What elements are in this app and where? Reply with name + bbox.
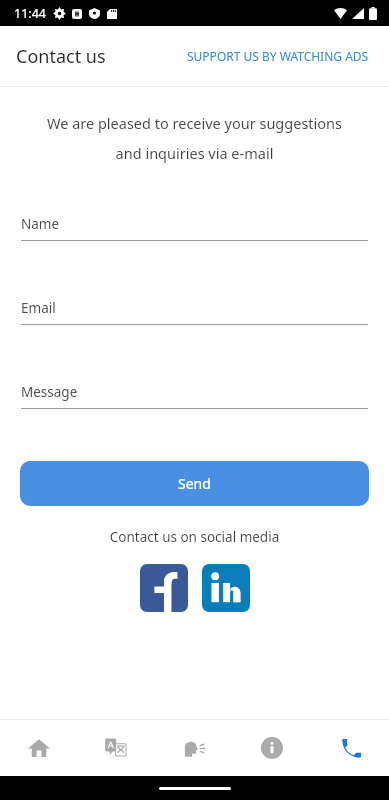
staticText: 11:44 (14, 5, 46, 22)
button[interactable]: Name (0, 215, 389, 241)
staticText: Message (21, 383, 78, 401)
button[interactable]: Speak (155, 720, 233, 776)
button[interactable]: SUPPORT US BY WATCHING ADS (183, 42, 373, 70)
button[interactable]: Message (0, 383, 389, 409)
button[interactable]: Home (0, 720, 77, 776)
staticText: Name (21, 215, 60, 233)
button[interactable]: Info (233, 720, 311, 776)
staticText: Contact us (16, 44, 106, 69)
staticText: Send (178, 474, 211, 493)
staticText: We are pleased to receive your suggestio… (0, 113, 389, 133)
button[interactable]: Translate (77, 720, 155, 776)
button[interactable]: Send (20, 461, 369, 506)
button[interactable]: Call (311, 720, 389, 776)
staticText: Contact us on social media (0, 528, 389, 546)
button[interactable]: Email (0, 299, 389, 325)
staticText: Email (21, 299, 56, 317)
staticText: and inquiries via e-mail (0, 143, 389, 163)
button[interactable]: Facebook (140, 564, 188, 612)
staticText: SUPPORT US BY WATCHING ADS (187, 48, 369, 64)
button[interactable]: LinkedIn (202, 564, 250, 612)
